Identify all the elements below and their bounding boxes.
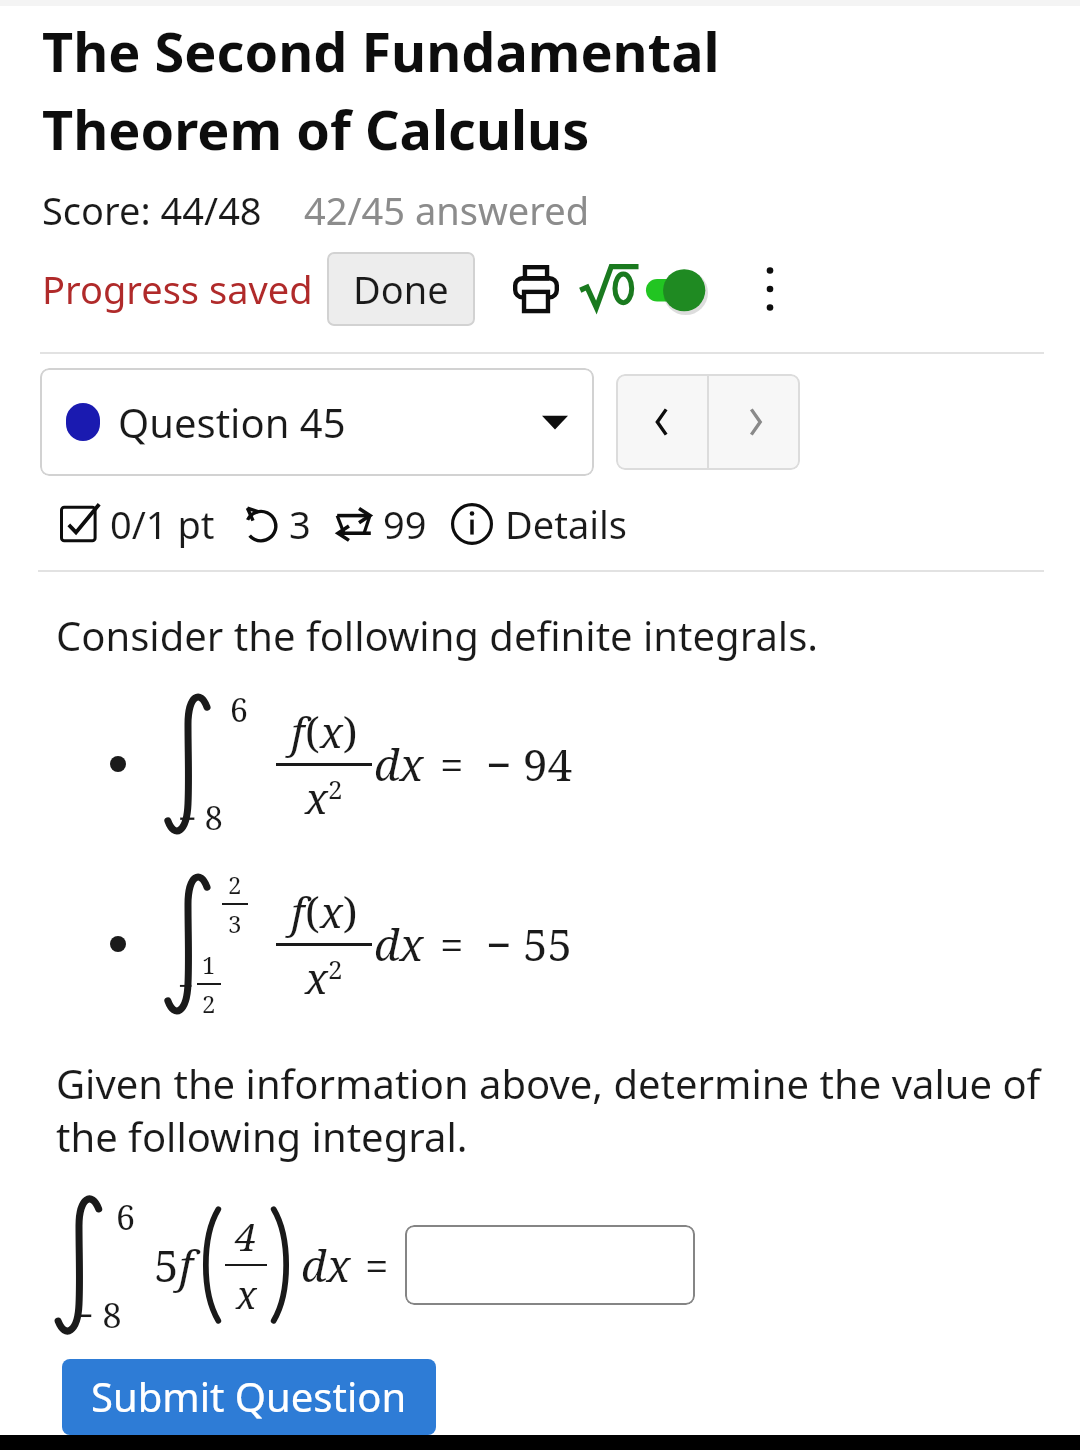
staticText: Done [353,263,449,315]
staticText: − 94 [486,734,573,794]
staticText: 5 [154,1235,179,1295]
staticText: 6 [230,688,248,732]
staticText: dx [374,734,424,794]
staticText: ( [305,703,320,760]
staticText: 2 [228,868,242,901]
button[interactable] [405,1225,695,1305]
staticText: − 55 [486,914,573,974]
staticText: 4 [235,1210,257,1262]
staticText: Details [505,498,628,550]
staticText: − [178,967,194,1002]
staticText: Submit Question [91,1369,407,1423]
staticText: − 8 [178,796,223,840]
staticText: dx [374,914,424,974]
button[interactable]: Previous question [616,374,707,470]
button[interactable]: More options [741,260,799,318]
staticText: 99 [383,498,427,550]
staticText: Given the information above, determine t… [56,1056,1041,1164]
staticText: dx [301,1235,351,1295]
staticText: x [236,1268,257,1320]
button[interactable]: Next question [709,374,800,470]
staticText: ( [305,883,320,940]
button[interactable]: Details [451,498,628,550]
staticText: 1 [202,948,216,981]
staticText: x [305,949,328,1006]
staticText: Consider the following definite integral… [56,608,819,662]
staticText: − 8 [74,1292,122,1338]
button[interactable]: Question 45 [40,368,594,476]
staticText: 42/45 answered [304,184,590,236]
staticText: 2 [328,951,343,986]
button[interactable]: Print [505,258,567,320]
button[interactable]: 0/1 pt [60,498,219,550]
button[interactable]: Done [327,252,475,326]
staticText: 2 [328,771,343,806]
staticText: f [291,703,305,760]
button[interactable]: Submit Question [62,1359,436,1435]
staticText: Progress saved [42,263,313,315]
staticText: f [179,1235,193,1295]
staticText: x [305,769,328,826]
staticText: 6 [116,1194,136,1240]
staticText: 0/1 pt [110,498,215,550]
staticText: Score: 44/48 [42,184,262,236]
staticText: x [320,883,343,940]
staticText: ) [343,703,358,760]
staticText: = [365,1237,389,1294]
staticText: 3 [289,498,311,550]
staticText: 3 [228,907,242,940]
staticText: 2 [202,987,216,1020]
staticText: = [440,916,464,973]
staticText: x [320,703,343,760]
staticText: f [291,883,305,940]
staticText: The Second Fundamental Theorem of Calcul… [42,14,720,166]
button[interactable]: Toggle math view [579,258,725,320]
staticText: ) [343,883,358,940]
staticText: = [440,736,464,793]
staticText: Question 45 [118,395,346,449]
